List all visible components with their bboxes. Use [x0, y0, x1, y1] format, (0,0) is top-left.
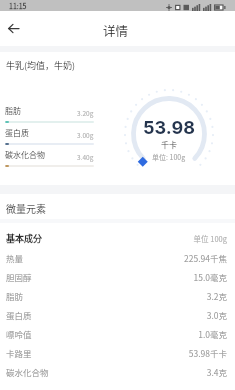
staticText: 微量元素: [6, 201, 46, 215]
staticText: 3.00g: [77, 130, 94, 139]
staticText: 1.0毫克: [198, 328, 227, 340]
button[interactable]: 脂肪: [0, 286, 235, 305]
staticText: 详情: [103, 21, 129, 39]
staticText: 千卡: [161, 139, 177, 151]
staticText: 53.98千卡: [188, 347, 227, 359]
button[interactable]: 碳水化合物: [0, 362, 235, 381]
staticText: 3.0克: [206, 309, 227, 321]
staticText: 脂肪: [5, 105, 21, 117]
staticText: 15.0毫克: [193, 271, 227, 283]
button[interactable]: 胆固醇: [0, 267, 235, 286]
staticText: 11:15: [9, 1, 27, 11]
staticText: 脂肪: [6, 290, 24, 302]
button[interactable]: 卡路里: [0, 343, 235, 362]
staticText: 碳水化合物: [5, 149, 45, 161]
staticText: 3.20g: [77, 108, 94, 117]
staticText: 单位 100g: [193, 233, 227, 244]
button[interactable]: 蛋白质: [0, 305, 235, 324]
staticText: 3.40g: [77, 152, 94, 161]
button[interactable]: 嘌呤值: [0, 324, 235, 343]
staticText: 53.98: [143, 117, 195, 139]
staticText: 225.94千焦: [184, 252, 227, 264]
staticText: 热量: [6, 252, 24, 264]
staticText: 基本成分: [6, 232, 43, 245]
staticText: 碳水化合物: [6, 366, 49, 378]
staticText: 3.2克: [206, 290, 227, 302]
button[interactable]: 热量: [0, 248, 235, 267]
staticText: 蛋白质: [5, 127, 29, 139]
staticText: 单位: 100g: [152, 152, 186, 162]
staticText: 卡路里: [6, 347, 32, 359]
staticText: 胆固醇: [6, 271, 32, 283]
staticText: 嘌呤值: [6, 328, 32, 340]
staticText: 牛乳(均值，牛奶): [6, 59, 76, 72]
button[interactable]: Back: [2, 17, 25, 40]
staticText: 蛋白质: [6, 309, 32, 321]
button[interactable]: 基本成分: [0, 229, 235, 248]
staticText: 3.4克: [206, 366, 227, 378]
